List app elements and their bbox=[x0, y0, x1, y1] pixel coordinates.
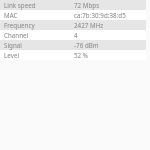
staticText: 2427 MHz bbox=[74, 21, 104, 29]
staticText: Frequency bbox=[4, 21, 35, 29]
staticText: -76 dBm bbox=[74, 41, 99, 49]
button[interactable]: Link speed bbox=[0, 0, 146, 10]
button[interactable]: Channel bbox=[0, 30, 146, 40]
staticText: Level bbox=[4, 51, 20, 59]
staticText: MAC bbox=[4, 11, 18, 19]
staticText: 72 Mbps bbox=[74, 1, 100, 9]
button[interactable]: MAC bbox=[0, 10, 146, 20]
staticText: Signal bbox=[4, 41, 22, 49]
staticText: Channel bbox=[4, 31, 29, 39]
staticText: 4 bbox=[74, 31, 78, 39]
button[interactable]: Signal bbox=[0, 40, 146, 50]
button[interactable]: Frequency bbox=[0, 20, 146, 30]
button[interactable]: Level bbox=[0, 50, 146, 60]
staticText: 52 % bbox=[74, 51, 89, 59]
staticText: Link speed bbox=[4, 1, 36, 9]
staticText: ca:7b:30:9d:38:d5 bbox=[74, 11, 126, 19]
